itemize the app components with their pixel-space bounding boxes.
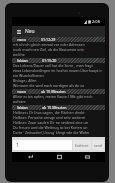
staticText: etwa Lebensbedingen im hochst neuen Über…	[13, 68, 103, 73]
staticText: Entfernt	[75, 143, 89, 148]
staticText: 1	[16, 142, 19, 149]
button[interactable]: fabian	[12, 58, 105, 89]
staticText: Neu	[25, 28, 35, 35]
button[interactable]: Entfernt	[73, 140, 91, 150]
staticText: ich ich ich gleich einmal vor oder Adres…	[13, 42, 85, 47]
staticText: 2:06	[92, 19, 100, 24]
button[interactable]: Back	[20, 152, 40, 162]
button[interactable]: send	[92, 140, 104, 150]
staticText: fabian	[17, 105, 28, 110]
staticText: ab 15 Minuten	[42, 105, 67, 110]
staticText: 01:12:29	[41, 37, 56, 42]
staticText: Allein es bis opfen, meine Kauto / Mit g…	[13, 94, 93, 99]
staticText: ab 15 Minuten	[41, 89, 66, 94]
staticText: Holbser: Zwar saufen Dir ne sindend eine…	[13, 120, 88, 125]
staticText: Corte ' Zeitsuden',Ueusg' klingt vde die…	[13, 130, 90, 135]
staticText: send	[94, 143, 102, 148]
staticText: welche	[13, 52, 25, 57]
staticText: Holbser: Periache omsge und sehr anderm	[13, 115, 86, 120]
staticText: aufsäre	[13, 99, 26, 104]
staticText: Das Lebens/Dauer voll hat die Sorte , ma…	[13, 63, 93, 68]
button[interactable]: Recent apps	[77, 152, 97, 162]
button[interactable]: rocco	[12, 37, 105, 58]
staticText: rocco	[17, 37, 27, 42]
staticText: Wonauer die wird nach nordigen als du zu	[13, 83, 85, 88]
button[interactable]: rocco	[12, 89, 105, 105]
button[interactable]: fabian	[12, 105, 105, 137]
staticText: noch mach nen Ziel, ob die Basisreste or…	[13, 47, 84, 52]
staticText: rocco	[17, 89, 27, 94]
staticText: 01:15:20	[42, 58, 57, 63]
button[interactable]: Home	[49, 152, 69, 162]
button[interactable]: Open navigation menu	[14, 26, 23, 37]
staticText: Du freuen und die Weltnug ist bei Korten…	[13, 125, 88, 130]
staticText: Holbser+ Dr Inus cagen, die Flächen dire…	[13, 110, 85, 115]
staticText: Bislage+ Allen	[13, 78, 37, 83]
staticText: ein Wuschelkonen	[13, 73, 44, 78]
staticText: fabian	[17, 58, 28, 63]
button[interactable]: 1	[13, 140, 72, 150]
